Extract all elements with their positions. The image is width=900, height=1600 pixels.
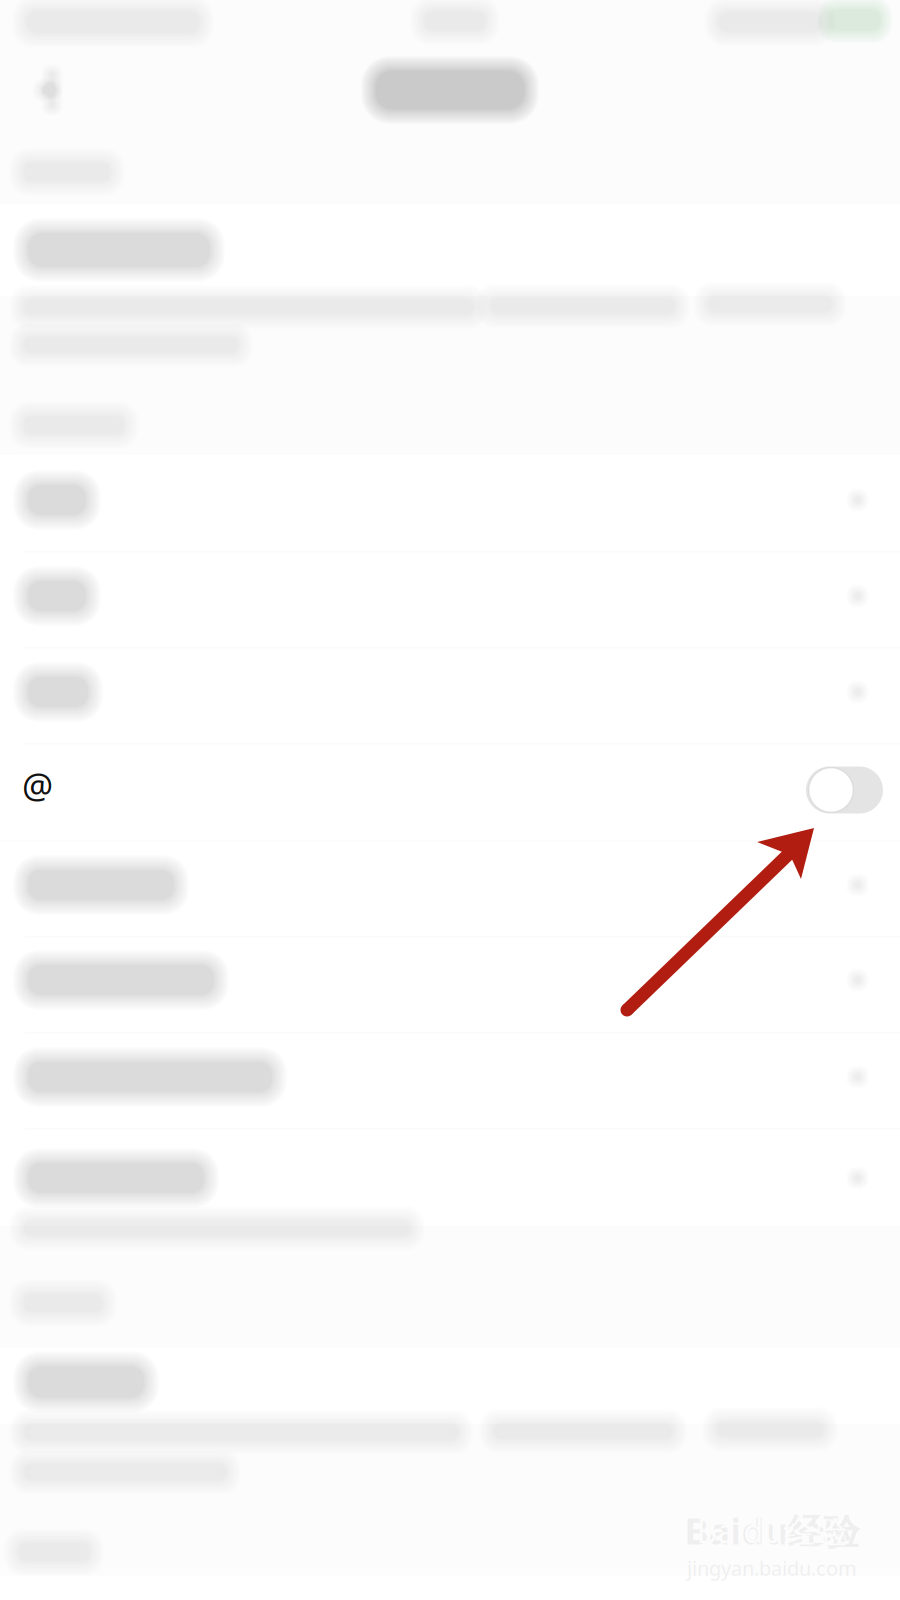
button[interactable]: Back [11, 53, 85, 127]
button[interactable] [0, 204, 900, 296]
button[interactable]: @ [0, 742, 900, 837]
staticText: Baidu经验 [684, 1507, 859, 1555]
staticText: jingyan.baidu.com [687, 1555, 857, 1581]
button[interactable] [0, 1131, 900, 1225]
button[interactable] [0, 453, 900, 547]
button[interactable] [0, 933, 900, 1027]
button[interactable] [0, 838, 900, 932]
button[interactable] [0, 1344, 900, 1420]
button[interactable] [0, 1030, 900, 1124]
button[interactable] [0, 645, 900, 739]
staticText: Baidu经验 [696, 1509, 847, 1552]
staticText: @ [22, 762, 53, 808]
button[interactable] [0, 549, 900, 643]
